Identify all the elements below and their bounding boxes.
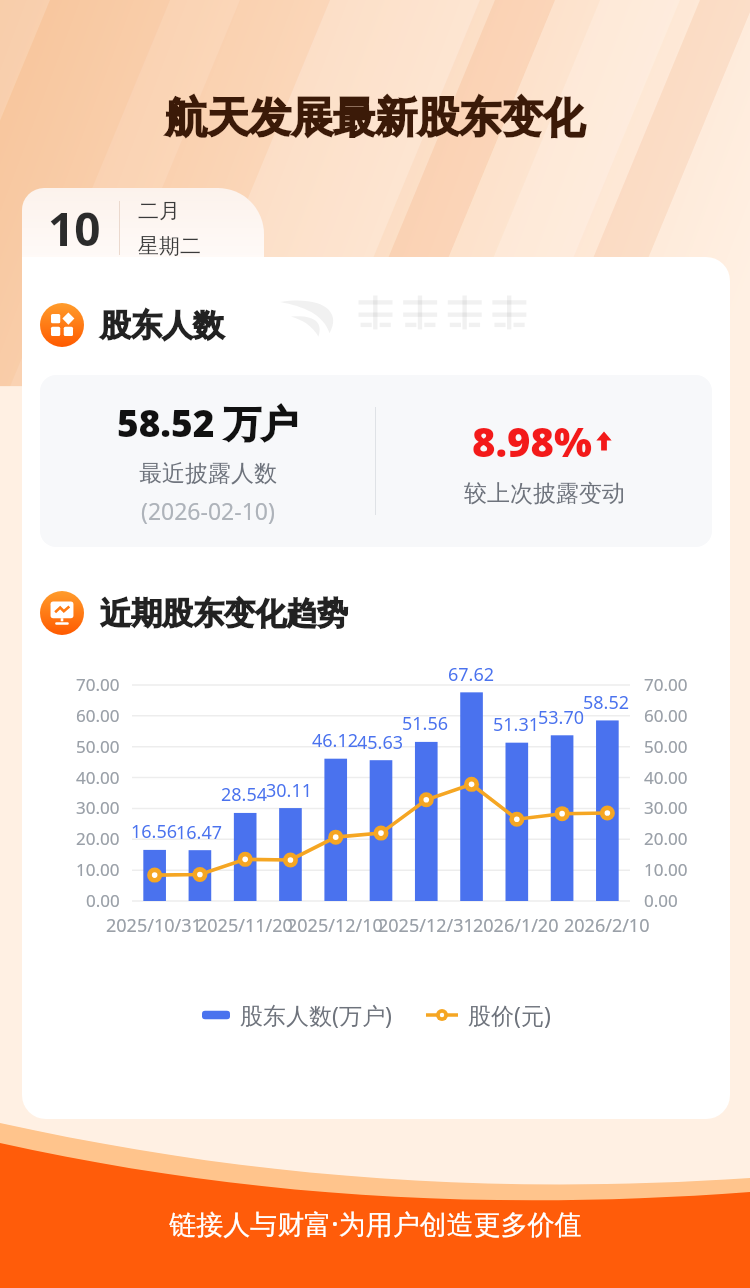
button[interactable]: 10 (22, 188, 264, 268)
staticText: 最近披露人数 (139, 459, 277, 488)
staticText: 70.00 (644, 673, 688, 696)
staticText: 2026/2/10 (564, 913, 650, 938)
staticText: 67.62 (448, 662, 495, 687)
staticText: 16.56 (131, 819, 178, 844)
staticText: 28.54 (221, 782, 268, 807)
staticText: 10.00 (644, 858, 688, 881)
staticText: 星期二 (138, 233, 201, 259)
staticText: 0.00 (644, 889, 678, 912)
staticText: 较上次披露变动 (464, 479, 625, 508)
staticText: 70.00 (76, 673, 120, 696)
staticText: 60.00 (644, 704, 688, 727)
staticText: 58.52 万户 (117, 397, 299, 448)
staticText: 2025/11/20 (197, 913, 293, 938)
staticText: 股东人数 (100, 306, 224, 345)
staticText: 链接人与财富·为用户创造更多价值 (169, 1205, 582, 1242)
staticText: 2025/12/10 (287, 913, 383, 938)
staticText: 30.00 (644, 796, 688, 819)
staticText: 2026/1/20 (473, 913, 559, 938)
staticText: 51.56 (402, 711, 449, 736)
staticText: 股东人数(万户) (240, 999, 392, 1030)
button[interactable]: 近期股东变化趋势 (40, 591, 348, 635)
staticText: 10 (48, 197, 101, 260)
staticText: 40.00 (644, 766, 688, 789)
staticText: 20.00 (76, 827, 120, 850)
button[interactable]: 股东人数 (40, 303, 224, 347)
staticText: 50.00 (644, 735, 688, 758)
staticText: 53.70 (538, 705, 585, 730)
button[interactable]: 58.52 万户 (40, 375, 712, 547)
staticText: 60.00 (76, 704, 120, 727)
button[interactable]: 股东人数 (40, 303, 84, 347)
button[interactable]: 近期股东变化趋势 (40, 591, 84, 635)
staticText: 51.31 (493, 712, 540, 737)
staticText: 30.11 (266, 778, 313, 803)
staticText: 8.98% (472, 414, 592, 468)
staticText: 股价(元) (468, 999, 551, 1030)
staticText: 20.00 (644, 827, 688, 850)
staticText: 航天发展最新股东变化 (165, 92, 585, 145)
staticText: 近期股东变化趋势 (100, 594, 348, 633)
staticText: 2025/10/31 (106, 913, 202, 938)
staticText: 30.00 (76, 796, 120, 819)
staticText: 45.63 (357, 730, 404, 755)
staticText: 16.47 (176, 820, 223, 845)
staticText: 46.12 (312, 728, 359, 753)
staticText: 40.00 (76, 766, 120, 789)
staticText: 2025/12/31 (378, 913, 474, 938)
staticText: 50.00 (76, 735, 120, 758)
staticText: 58.52 (583, 690, 630, 715)
staticText: 二月 (138, 198, 180, 224)
staticText: 0.00 (86, 889, 120, 912)
staticText: (2026-02-10) (141, 495, 275, 526)
staticText: 10.00 (76, 858, 120, 881)
